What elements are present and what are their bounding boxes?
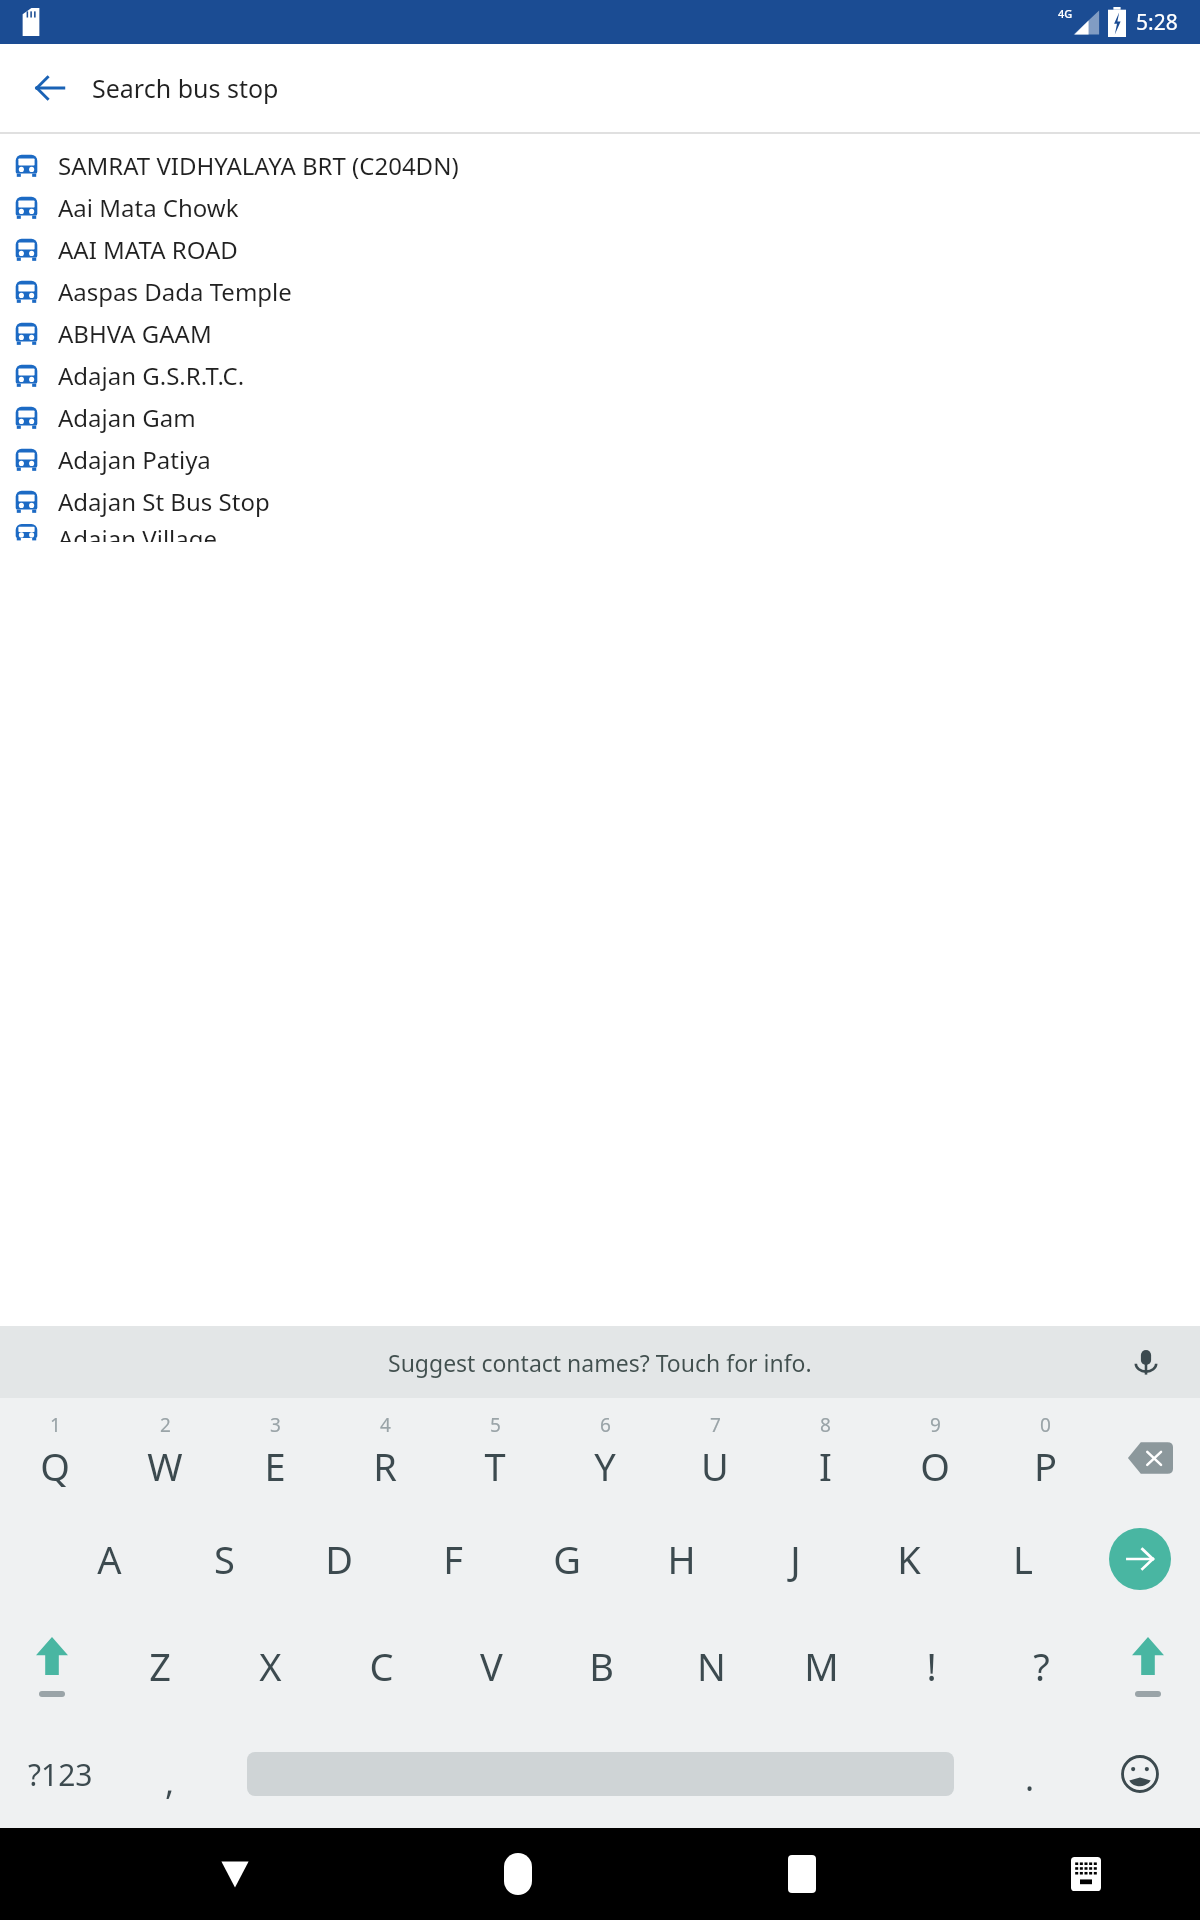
button[interactable]: 8 xyxy=(770,1398,880,1505)
staticText: W xyxy=(147,1440,183,1492)
button[interactable]: Aai Mata Chowk xyxy=(0,186,1200,228)
button[interactable]: V xyxy=(436,1612,546,1720)
button[interactable]: Adajan Patiya xyxy=(0,438,1200,480)
staticText: ?123 xyxy=(28,1754,93,1795)
button[interactable]: Z xyxy=(104,1612,215,1720)
button[interactable]: C xyxy=(326,1612,436,1720)
staticText: X xyxy=(259,1640,282,1692)
button[interactable]: Adajan Village xyxy=(0,522,1200,542)
button[interactable]: K xyxy=(852,1505,966,1612)
button[interactable]: , xyxy=(120,1720,220,1828)
staticText: Y xyxy=(594,1440,616,1492)
staticText: 9 xyxy=(930,1412,941,1438)
staticText: V xyxy=(480,1640,503,1692)
button[interactable]: . xyxy=(980,1720,1080,1828)
button[interactable]: N xyxy=(656,1612,766,1720)
button[interactable]: Voice input xyxy=(1122,1338,1170,1386)
button[interactable]: A xyxy=(52,1505,167,1612)
staticText: 4 xyxy=(380,1412,391,1438)
staticText: N xyxy=(697,1640,726,1692)
button[interactable]: Adajan St Bus Stop xyxy=(0,480,1200,522)
button[interactable]: ? xyxy=(986,1612,1096,1720)
staticText: S xyxy=(214,1533,235,1585)
staticText: Suggest contact names? Touch for info. xyxy=(388,1347,812,1378)
button[interactable]: SAMRAT VIDHYALAYA BRT (C204DN) xyxy=(0,144,1200,186)
staticText: E xyxy=(264,1440,286,1492)
button[interactable]: Shift xyxy=(0,1612,104,1720)
staticText: 6 xyxy=(600,1412,611,1438)
button[interactable]: ABHVA GAAM xyxy=(0,312,1200,354)
staticText: L xyxy=(1013,1533,1033,1585)
button[interactable]: Back xyxy=(187,1828,283,1920)
staticText: Aaspas Dada Temple xyxy=(58,275,292,308)
staticText: Aai Mata Chowk xyxy=(58,191,239,224)
staticText: ? xyxy=(1033,1640,1050,1692)
button[interactable]: Aaspas Dada Temple xyxy=(0,270,1200,312)
button[interactable]: 9 xyxy=(880,1398,990,1505)
button[interactable]: Suggest contact names? Touch for info. xyxy=(0,1326,1200,1398)
button[interactable]: 6 xyxy=(550,1398,660,1505)
button[interactable]: ! xyxy=(876,1612,986,1720)
staticText: F xyxy=(443,1533,463,1585)
button[interactable]: AAI MATA ROAD xyxy=(0,228,1200,270)
staticText: Adajan St Bus Stop xyxy=(58,485,270,518)
button[interactable]: Shift xyxy=(1096,1612,1200,1720)
staticText: Z xyxy=(149,1640,171,1692)
staticText: Adajan Village xyxy=(58,522,218,542)
button[interactable]: Enter xyxy=(1080,1505,1200,1612)
staticText: . xyxy=(1025,1755,1035,1801)
button[interactable]: Switch keyboard xyxy=(1038,1828,1134,1920)
button[interactable]: Emoji xyxy=(1080,1720,1200,1828)
staticText: Adajan Patiya xyxy=(58,443,211,476)
staticText: , xyxy=(165,1759,175,1805)
button[interactable]: 5 xyxy=(440,1398,550,1505)
staticText: 4G xyxy=(1058,6,1073,21)
staticText: Adajan G.S.R.T.C. xyxy=(58,359,245,392)
button[interactable]: 4 xyxy=(330,1398,440,1505)
staticText: 8 xyxy=(820,1412,831,1438)
button[interactable]: 7 xyxy=(660,1398,770,1505)
staticText: H xyxy=(667,1533,696,1585)
button[interactable]: Back xyxy=(14,52,86,124)
button[interactable]: X xyxy=(215,1612,326,1720)
button[interactable]: S xyxy=(167,1505,282,1612)
staticText: B xyxy=(589,1640,614,1692)
staticText: A xyxy=(97,1533,122,1585)
button[interactable]: J xyxy=(738,1505,852,1612)
button[interactable]: 2 xyxy=(110,1398,220,1505)
button[interactable]: 0 xyxy=(990,1398,1100,1505)
button[interactable]: Space xyxy=(220,1720,980,1828)
staticText: 5 xyxy=(490,1412,501,1438)
button[interactable]: Backspace xyxy=(1100,1398,1200,1505)
staticText: G xyxy=(553,1533,581,1585)
button[interactable]: 1 xyxy=(0,1398,110,1505)
staticText: R xyxy=(373,1440,397,1492)
button[interactable]: Home xyxy=(470,1828,566,1920)
staticText: ! xyxy=(926,1640,937,1692)
staticText: D xyxy=(325,1533,353,1585)
staticText: 5:28 xyxy=(1136,8,1178,37)
staticText: I xyxy=(819,1440,832,1492)
button[interactable]: G xyxy=(510,1505,624,1612)
button[interactable]: F xyxy=(396,1505,510,1612)
staticText: SAMRAT VIDHYALAYA BRT (C204DN) xyxy=(58,149,459,182)
button[interactable]: ?123 xyxy=(0,1720,120,1828)
staticText: 0 xyxy=(1040,1412,1051,1438)
button[interactable]: 3 xyxy=(220,1398,330,1505)
button[interactable]: D xyxy=(282,1505,396,1612)
staticText: O xyxy=(920,1440,950,1492)
button[interactable]: Adajan G.S.R.T.C. xyxy=(0,354,1200,396)
button[interactable]: M xyxy=(766,1612,876,1720)
button[interactable]: Recent apps xyxy=(754,1828,850,1920)
button[interactable]: L xyxy=(966,1505,1080,1612)
staticText: M xyxy=(804,1640,839,1692)
button[interactable]: H xyxy=(624,1505,738,1612)
staticText: P xyxy=(1034,1440,1057,1492)
staticText: 1 xyxy=(50,1412,61,1438)
staticText: Search bus stop xyxy=(92,71,279,105)
staticText: 3 xyxy=(270,1412,281,1438)
button[interactable]: B xyxy=(546,1612,656,1720)
staticText: Adajan Gam xyxy=(58,401,196,434)
staticText: T xyxy=(484,1440,506,1492)
button[interactable]: Adajan Gam xyxy=(0,396,1200,438)
